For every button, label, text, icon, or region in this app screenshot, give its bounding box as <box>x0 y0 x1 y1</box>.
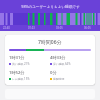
staticText: 4時33分 <box>50 55 66 61</box>
button[interactable]: 98%のユーザーよりもよい睡眠です <box>0 4 100 9</box>
staticText: 03:05 <box>56 26 63 30</box>
staticText: 浅い睡眠 21% <box>12 62 30 66</box>
other: Sleep stage timeline <box>0 13 100 25</box>
staticText: 0分 <box>50 70 57 76</box>
button[interactable]: 1時31分 <box>9 55 50 66</box>
staticText: 98%のユーザーよりもよい睡眠です <box>21 4 80 9</box>
staticText: 7時間06分 <box>38 39 62 46</box>
button[interactable]: 7時間06分 <box>5 35 95 85</box>
staticText: 1時52分 <box>9 70 25 76</box>
button[interactable]: 0分 <box>50 70 91 81</box>
button[interactable]: 4時33分 <box>50 55 91 66</box>
staticText: 深い睡眠 64% <box>53 62 71 66</box>
button[interactable]: 1時52分 <box>9 70 50 81</box>
staticText: 1時31分 <box>9 55 25 61</box>
staticText: 06:05 <box>84 26 91 30</box>
staticText: 覚醒時間 <box>53 77 65 81</box>
staticText: 22:40 <box>3 26 10 30</box>
staticText: レム睡眠 15% <box>12 77 30 81</box>
staticText: 01:23 <box>28 26 35 30</box>
